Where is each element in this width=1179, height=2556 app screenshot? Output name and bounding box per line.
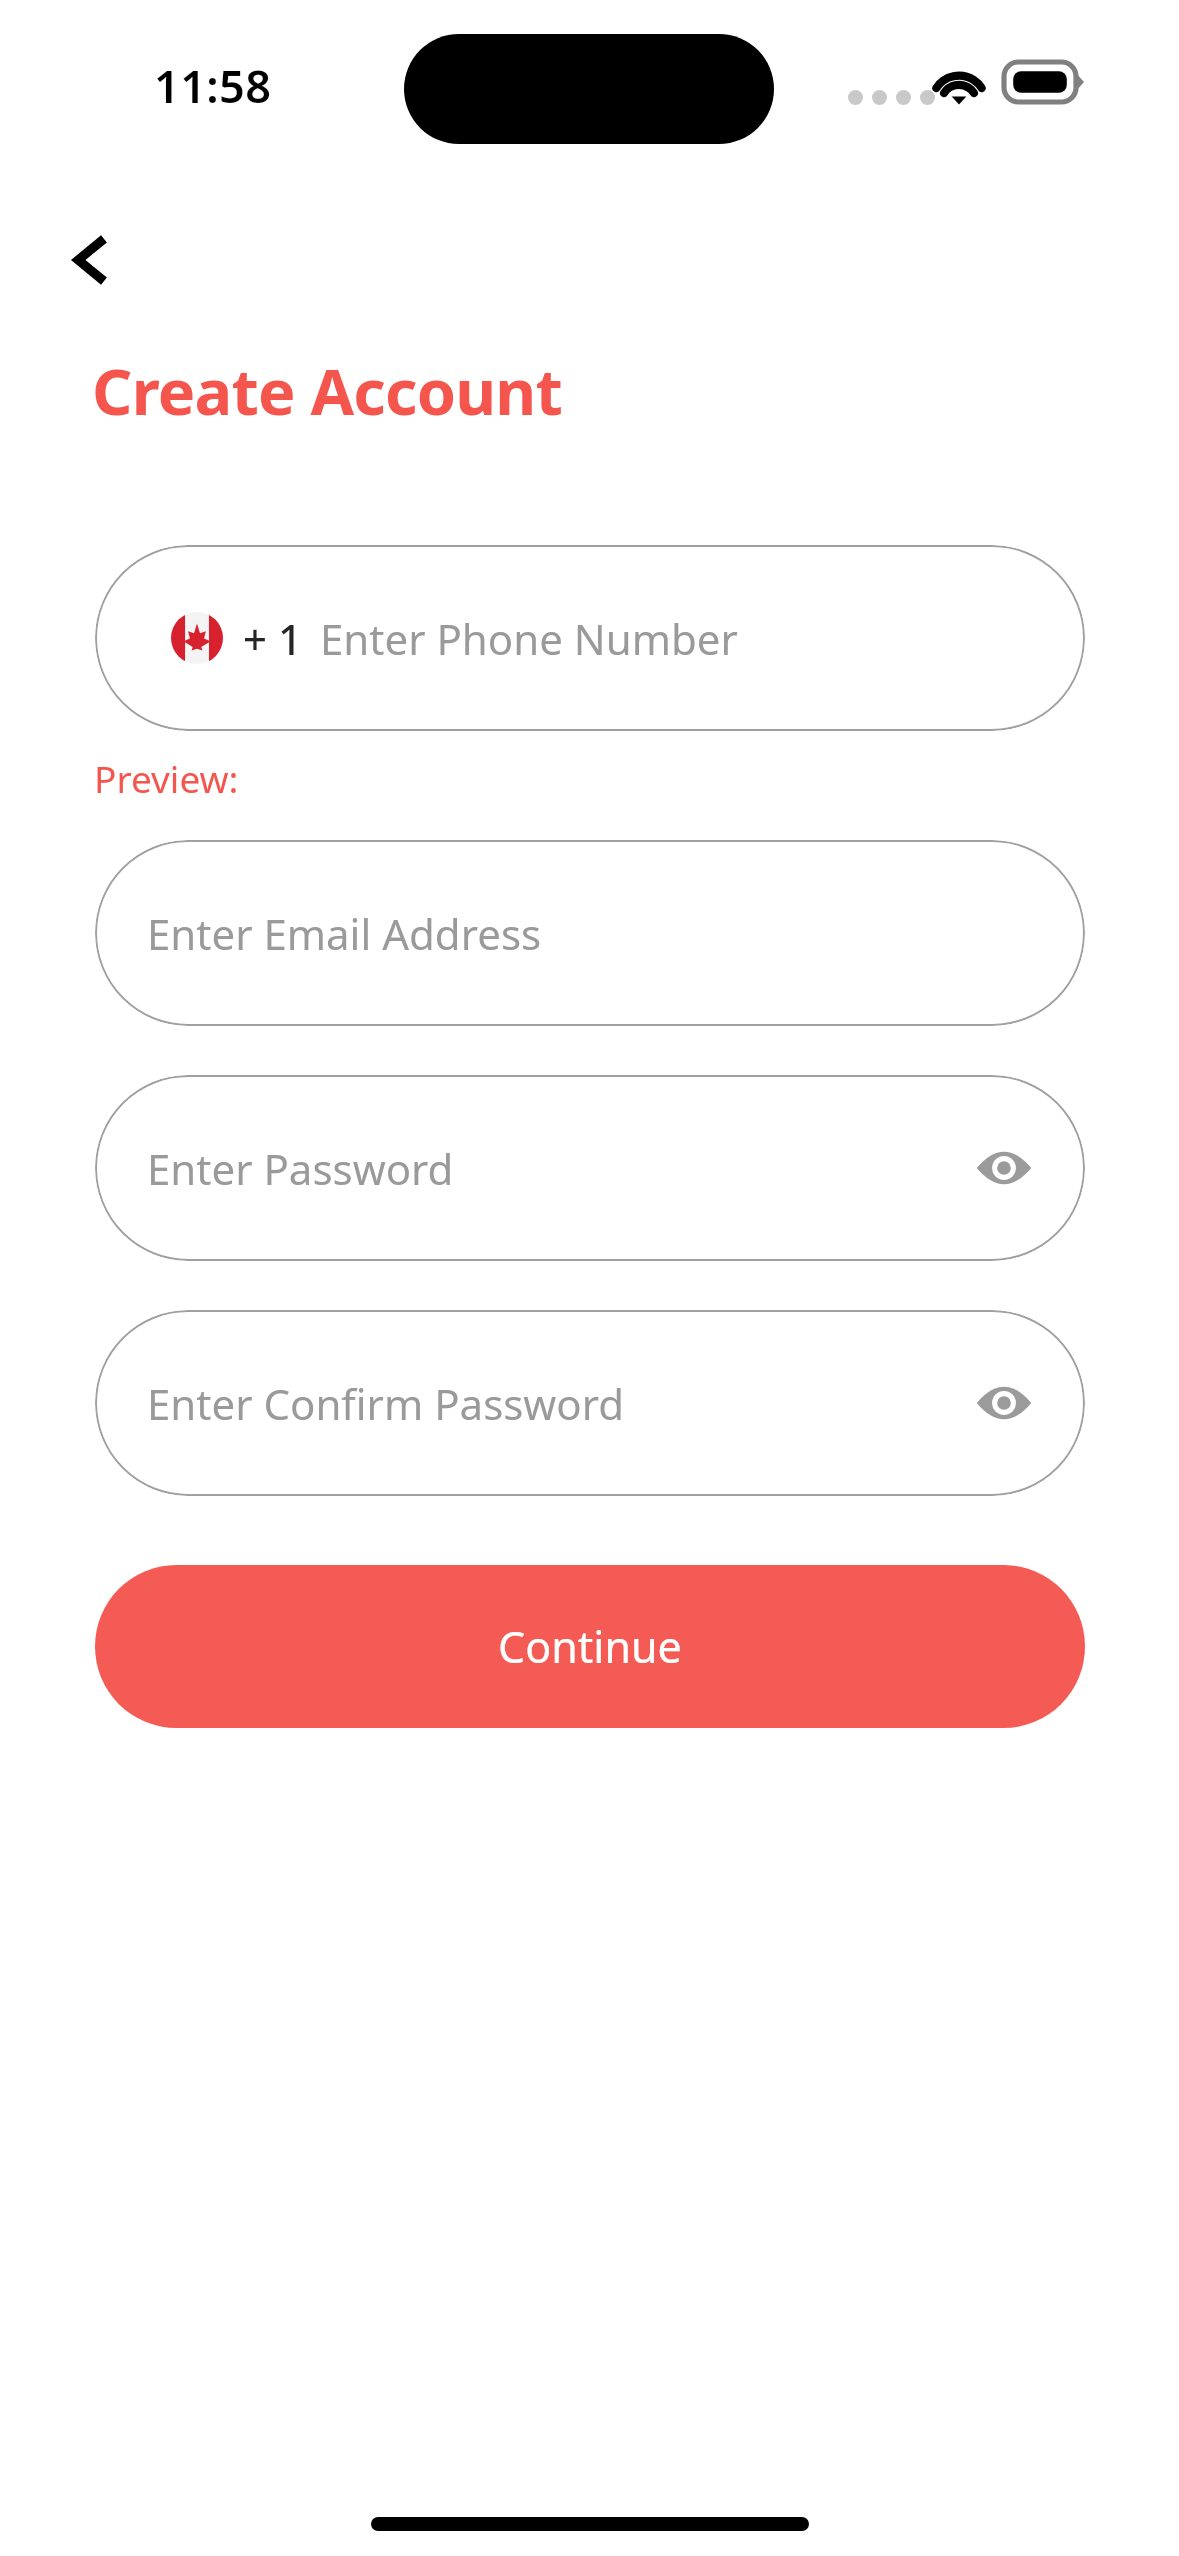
button[interactable]: Show confirm password xyxy=(961,1360,1047,1446)
staticText: Enter Email Address xyxy=(147,905,542,962)
button[interactable]: Show password xyxy=(961,1125,1047,1211)
staticText: Create Account xyxy=(92,348,563,434)
staticText: Enter Confirm Password xyxy=(147,1375,625,1432)
button[interactable]: Enter Password xyxy=(95,1075,1085,1261)
staticText: Enter Password xyxy=(147,1140,454,1197)
staticText: Preview: xyxy=(94,753,239,803)
button[interactable]: Enter Confirm Password xyxy=(95,1310,1085,1496)
staticText: Continue xyxy=(498,1617,682,1676)
button[interactable]: Continue xyxy=(95,1565,1085,1728)
button[interactable]: Back xyxy=(44,212,140,308)
button[interactable]: + 1 xyxy=(95,545,1085,731)
staticText: + 1 xyxy=(243,610,302,667)
button[interactable]: Enter Email Address xyxy=(95,840,1085,1026)
staticText: 11:58 xyxy=(154,55,272,116)
staticText: Enter Phone Number xyxy=(320,610,738,667)
